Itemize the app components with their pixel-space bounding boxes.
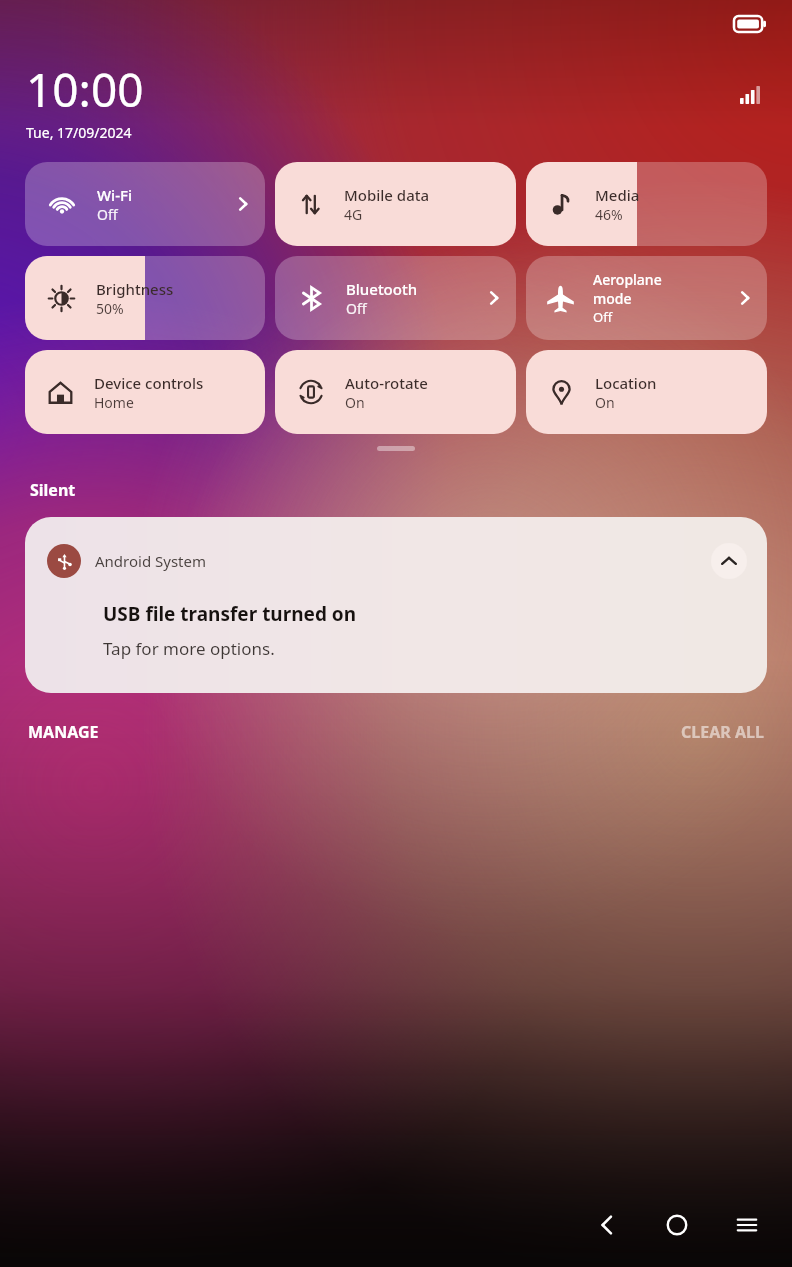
button[interactable]: Expand quick settings [377, 446, 415, 451]
staticText: Media [595, 185, 640, 205]
button[interactable]: Collapse notification [711, 543, 747, 579]
button[interactable]: MANAGE [28, 715, 99, 749]
staticText: 50% [96, 299, 124, 318]
staticText: Silent [30, 479, 76, 501]
button[interactable]: Recent apps [724, 1202, 770, 1248]
staticText: Off [97, 205, 118, 224]
staticText: Device controls [94, 373, 204, 393]
staticText: On [345, 393, 365, 412]
button[interactable]: Bluetooth [275, 256, 516, 340]
staticText: Aeroplane [593, 270, 662, 289]
button[interactable]: Device controls [25, 350, 265, 434]
staticText: CLEAR ALL [681, 721, 764, 743]
staticText: Bluetooth [346, 279, 418, 299]
button[interactable]: Android System [25, 517, 767, 693]
button[interactable]: Home [654, 1202, 700, 1248]
other: Battery full [734, 16, 766, 32]
staticText: Tap for more options. [103, 637, 275, 660]
button[interactable]: Aeroplane [526, 256, 767, 340]
staticText: Wi-Fi [97, 185, 132, 205]
staticText: mode [593, 289, 632, 308]
staticText: Mobile data [344, 185, 430, 205]
staticText: On [595, 393, 615, 412]
staticText: 10:00 [26, 58, 144, 121]
staticText: Location [595, 373, 657, 393]
staticText: Android System [95, 551, 207, 571]
staticText: 4G [344, 205, 363, 224]
button[interactable]: Media [526, 162, 767, 246]
button[interactable]: Mobile data [275, 162, 516, 246]
staticText: Tue, 17/09/2024 [26, 123, 132, 142]
staticText: Off [593, 308, 613, 326]
button[interactable]: Brightness [25, 256, 265, 340]
staticText: Auto-rotate [345, 373, 428, 393]
staticText: Brightness [96, 279, 174, 299]
button[interactable]: Back [584, 1202, 630, 1248]
staticText: USB file transfer turned on [103, 601, 357, 627]
button[interactable]: CLEAR ALL [681, 715, 764, 749]
button[interactable]: Location [526, 350, 767, 434]
staticText: Off [346, 299, 367, 318]
button[interactable]: Auto-rotate [275, 350, 516, 434]
staticText: MANAGE [28, 721, 99, 743]
staticText: 46% [595, 205, 623, 224]
other: Mobile signal [740, 86, 760, 104]
staticText: Home [94, 393, 134, 412]
button[interactable]: Wi-Fi [25, 162, 265, 246]
